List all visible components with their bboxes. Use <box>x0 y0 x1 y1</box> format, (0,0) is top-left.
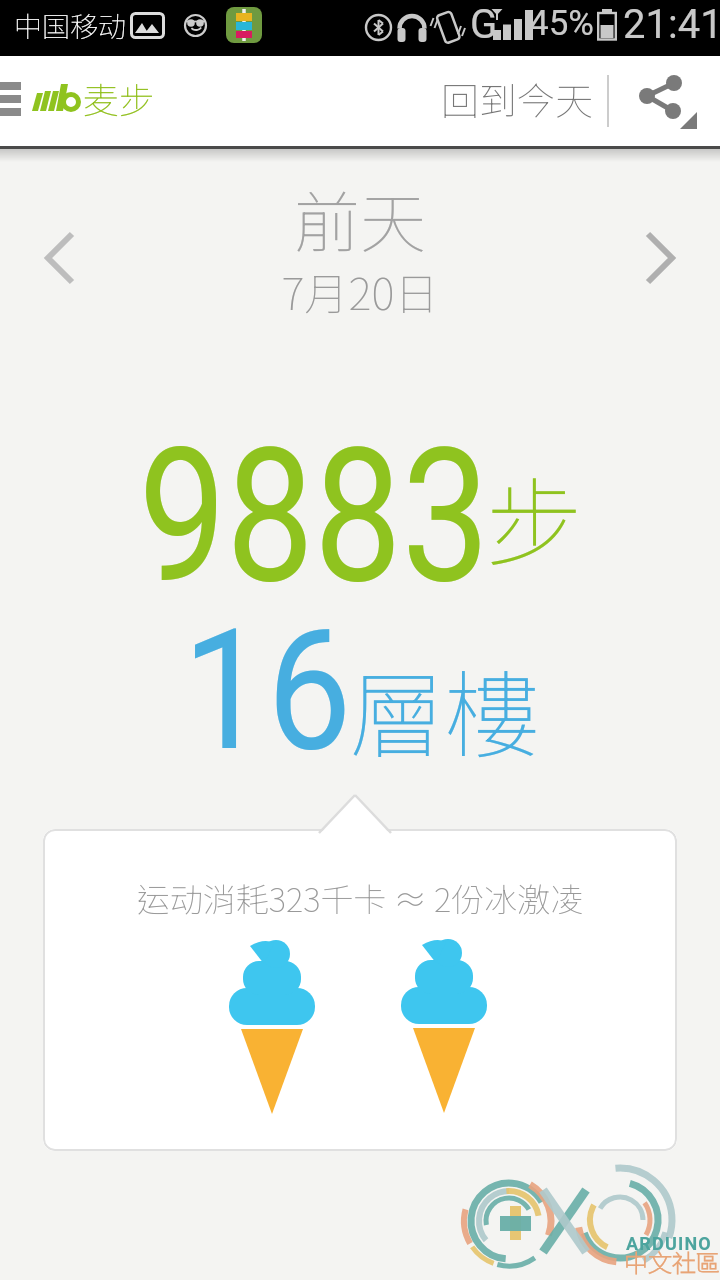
staticText: 層樓 <box>350 640 541 778</box>
staticText: G <box>470 1 498 48</box>
staticText: 步 <box>486 446 583 586</box>
staticText: 9883 <box>129 407 499 625</box>
staticText: 回到今天 <box>441 71 594 126</box>
staticText: 7月20日 <box>0 259 720 323</box>
staticText: 中国移动 <box>14 5 127 46</box>
staticText: 45% <box>529 3 594 44</box>
button[interactable] <box>634 70 700 132</box>
staticText: 中文社區 <box>624 1244 720 1279</box>
button[interactable] <box>44 232 76 284</box>
staticText: 16 <box>172 593 361 789</box>
staticText: 前天 <box>0 170 720 266</box>
staticText: 运动消耗323千卡 ≈ 2份冰激凌 <box>0 874 720 922</box>
button[interactable] <box>644 232 676 284</box>
staticText: 21:41 <box>623 1 720 48</box>
staticText: ARDUINO <box>626 1233 712 1254</box>
button[interactable] <box>0 82 22 118</box>
button[interactable]: 回到今天 <box>437 56 590 146</box>
button[interactable]: 麦步 <box>83 72 156 124</box>
